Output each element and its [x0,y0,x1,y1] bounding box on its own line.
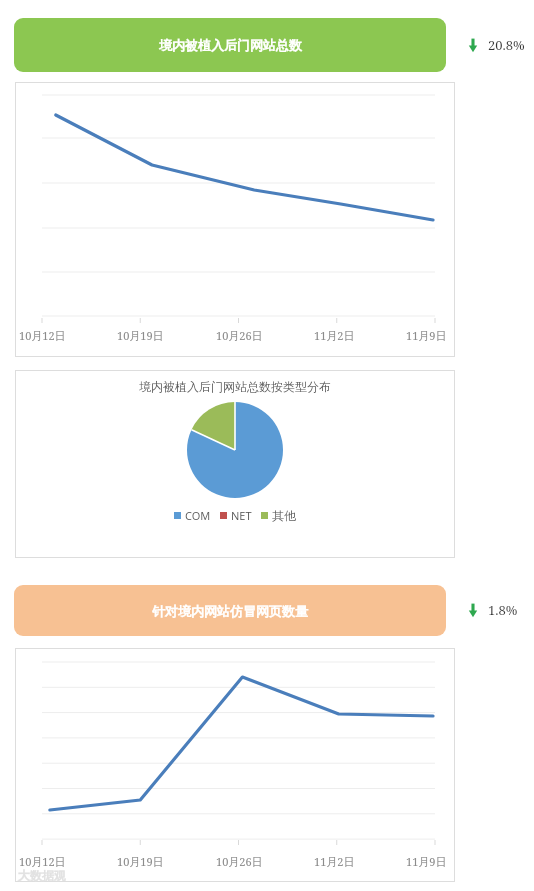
button[interactable]: Decrease [466,33,525,57]
staticText: 其他 [272,508,296,523]
staticText: 境内被植入后门网站总数 [159,37,302,53]
button[interactable]: COM [174,508,211,523]
staticText: 10月12日 [19,854,66,869]
staticText: NET [231,508,252,523]
button[interactable]: 10月12日 [15,82,455,357]
staticText: 11月9日 [406,328,447,343]
staticText: 10月26日 [216,854,263,869]
staticText: 境内被植入后门网站总数按类型分布 [139,379,331,394]
button[interactable]: 其他 [261,508,296,523]
staticText: 大数据观 [18,868,66,883]
staticText: 20.8% [488,36,525,54]
staticText: 11月9日 [406,854,447,869]
button[interactable]: NET [220,508,252,523]
staticText: 10月12日 [19,328,66,343]
staticText: 1.8% [488,601,518,619]
button[interactable]: Decrease [466,598,518,622]
button[interactable]: 10月12日 [15,648,455,882]
staticText: 10月26日 [216,328,263,343]
staticText: 10月19日 [117,854,164,869]
staticText: 11月2日 [314,328,355,343]
staticText: COM [185,508,211,523]
staticText: 10月19日 [117,328,164,343]
staticText: 11月2日 [314,854,355,869]
other: Decrease [466,35,480,55]
button[interactable]: 针对境内网站仿冒网页数量 [14,585,446,636]
staticText: 针对境内网站仿冒网页数量 [152,603,308,619]
other: Decrease [466,600,480,620]
button[interactable]: 境内被植入后门网站总数 [14,18,446,72]
button[interactable]: 境内被植入后门网站总数按类型分布 [15,370,455,558]
